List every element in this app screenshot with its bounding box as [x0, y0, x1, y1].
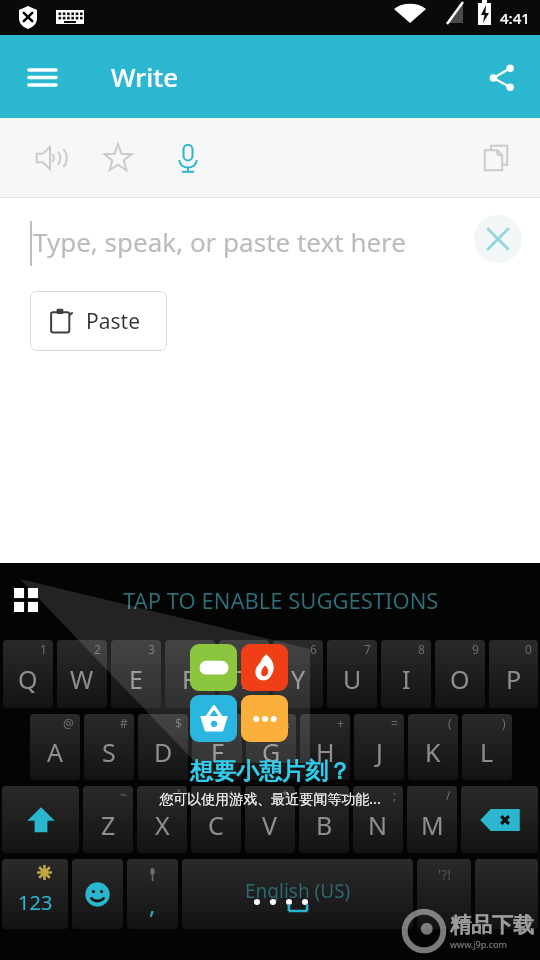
staticText: 5: [256, 641, 263, 657]
staticText: Y: [291, 662, 306, 696]
button[interactable]: ;: [353, 786, 403, 853]
staticText: K: [425, 735, 441, 769]
staticText: 想要小憩片刻？: [190, 757, 351, 786]
button[interactable]: /: [407, 786, 457, 853]
button[interactable]: 3: [111, 640, 161, 708]
staticText: L: [480, 735, 494, 769]
staticText: Paste: [86, 307, 140, 336]
staticText: P: [506, 662, 522, 696]
staticText: N: [368, 808, 388, 842]
button[interactable]: ˚: [137, 786, 187, 853]
staticText: 123: [18, 889, 53, 916]
button[interactable]: (: [408, 714, 458, 780]
button[interactable]: Open navigation menu: [14, 49, 70, 105]
staticText: E: [129, 662, 143, 696]
staticText: R: [182, 662, 198, 696]
staticText: F: [211, 735, 224, 769]
button[interactable]: Keyboard apps: [4, 578, 48, 622]
button[interactable]: space: [182, 859, 413, 929]
staticText: ^: [228, 787, 235, 803]
button[interactable]: 8: [381, 640, 431, 708]
button[interactable]: More: [241, 695, 288, 742]
staticText: %: [226, 715, 236, 731]
button[interactable]: 0: [489, 640, 538, 708]
staticText: 2: [94, 641, 101, 657]
staticText: Q: [18, 662, 38, 696]
staticText: ˚: [177, 787, 181, 803]
button[interactable]: 9: [435, 640, 485, 708]
staticText: 9: [472, 641, 479, 657]
staticText: @: [63, 715, 74, 731]
staticText: Z: [101, 808, 116, 842]
staticText: #: [120, 715, 128, 731]
button[interactable]: Games: [190, 644, 237, 691]
button[interactable]: Clear text: [474, 215, 522, 263]
staticText: Write: [111, 59, 179, 94]
button[interactable]: 123: [2, 859, 68, 929]
staticText: T: [237, 662, 251, 696]
button[interactable]: $: [138, 714, 188, 780]
button[interactable]: +: [300, 714, 350, 780]
button[interactable]: ~: [83, 786, 133, 853]
staticText: 6: [310, 641, 317, 657]
button[interactable]: 7: [327, 640, 377, 708]
button[interactable]: 5: [219, 640, 269, 708]
staticText: 7: [364, 641, 371, 657]
staticText: G: [262, 735, 281, 769]
button[interactable]: %: [192, 714, 242, 780]
staticText: V: [262, 808, 278, 842]
staticText: 4: [202, 641, 209, 657]
staticText: W: [70, 662, 94, 696]
button[interactable]: 4: [165, 640, 215, 708]
button[interactable]: Copy text: [468, 130, 524, 186]
button[interactable]: ·: [299, 786, 349, 853]
staticText: Type, speak, or paste text here: [33, 224, 406, 259]
button[interactable]: Favorite: [90, 130, 146, 186]
button[interactable]: back: [461, 786, 538, 853]
button[interactable]: Paste: [30, 291, 167, 351]
staticText: /: [446, 787, 451, 803]
staticText: U: [343, 662, 362, 696]
button[interactable]: shift: [2, 786, 79, 853]
staticText: B: [316, 808, 333, 842]
staticText: ;: [393, 787, 397, 803]
staticText: '?!: [438, 865, 451, 884]
button[interactable]: #: [84, 714, 134, 780]
button[interactable]: ^: [191, 786, 241, 853]
button[interactable]: TAP TO ENABLE SUGGESTIONS: [123, 585, 439, 615]
staticText: I: [402, 662, 411, 696]
button[interactable]: =: [354, 714, 404, 780]
staticText: M: [421, 808, 444, 842]
button[interactable]: Voice input: [160, 130, 216, 186]
button[interactable]: @: [30, 714, 80, 780]
staticText: 精品下载: [450, 912, 534, 938]
staticText: ,: [149, 888, 156, 921]
button[interactable]: *: [245, 786, 295, 853]
button[interactable]: ): [462, 714, 512, 780]
staticText: 1: [40, 641, 47, 657]
staticText: 0: [525, 641, 532, 657]
button[interactable]: enter: [475, 859, 538, 929]
staticText: 您可以使用游戏、最近要闻等功能...: [159, 789, 381, 808]
button[interactable]: 1: [3, 640, 53, 708]
button[interactable]: emoji: [72, 859, 123, 929]
staticText: *: [282, 787, 289, 803]
staticText: $: [175, 715, 182, 731]
staticText: =: [391, 715, 398, 731]
staticText: J: [376, 735, 383, 769]
button[interactable]: Shopping: [190, 695, 237, 742]
button[interactable]: Share: [474, 50, 528, 104]
button[interactable]: 2: [57, 640, 107, 708]
staticText: H: [316, 735, 335, 769]
staticText: English (US): [245, 878, 351, 904]
button[interactable]: comma: [127, 859, 178, 929]
staticText: www.j9p.com: [450, 938, 507, 950]
button[interactable]: Trending: [241, 644, 288, 691]
button[interactable]: qm: [417, 859, 471, 929]
button[interactable]: Read aloud: [22, 130, 78, 186]
staticText: +: [337, 715, 344, 731]
button[interactable]: 6: [273, 640, 323, 708]
button[interactable]: &: [246, 714, 296, 780]
staticText: X: [155, 808, 170, 842]
staticText: ): [502, 715, 506, 731]
